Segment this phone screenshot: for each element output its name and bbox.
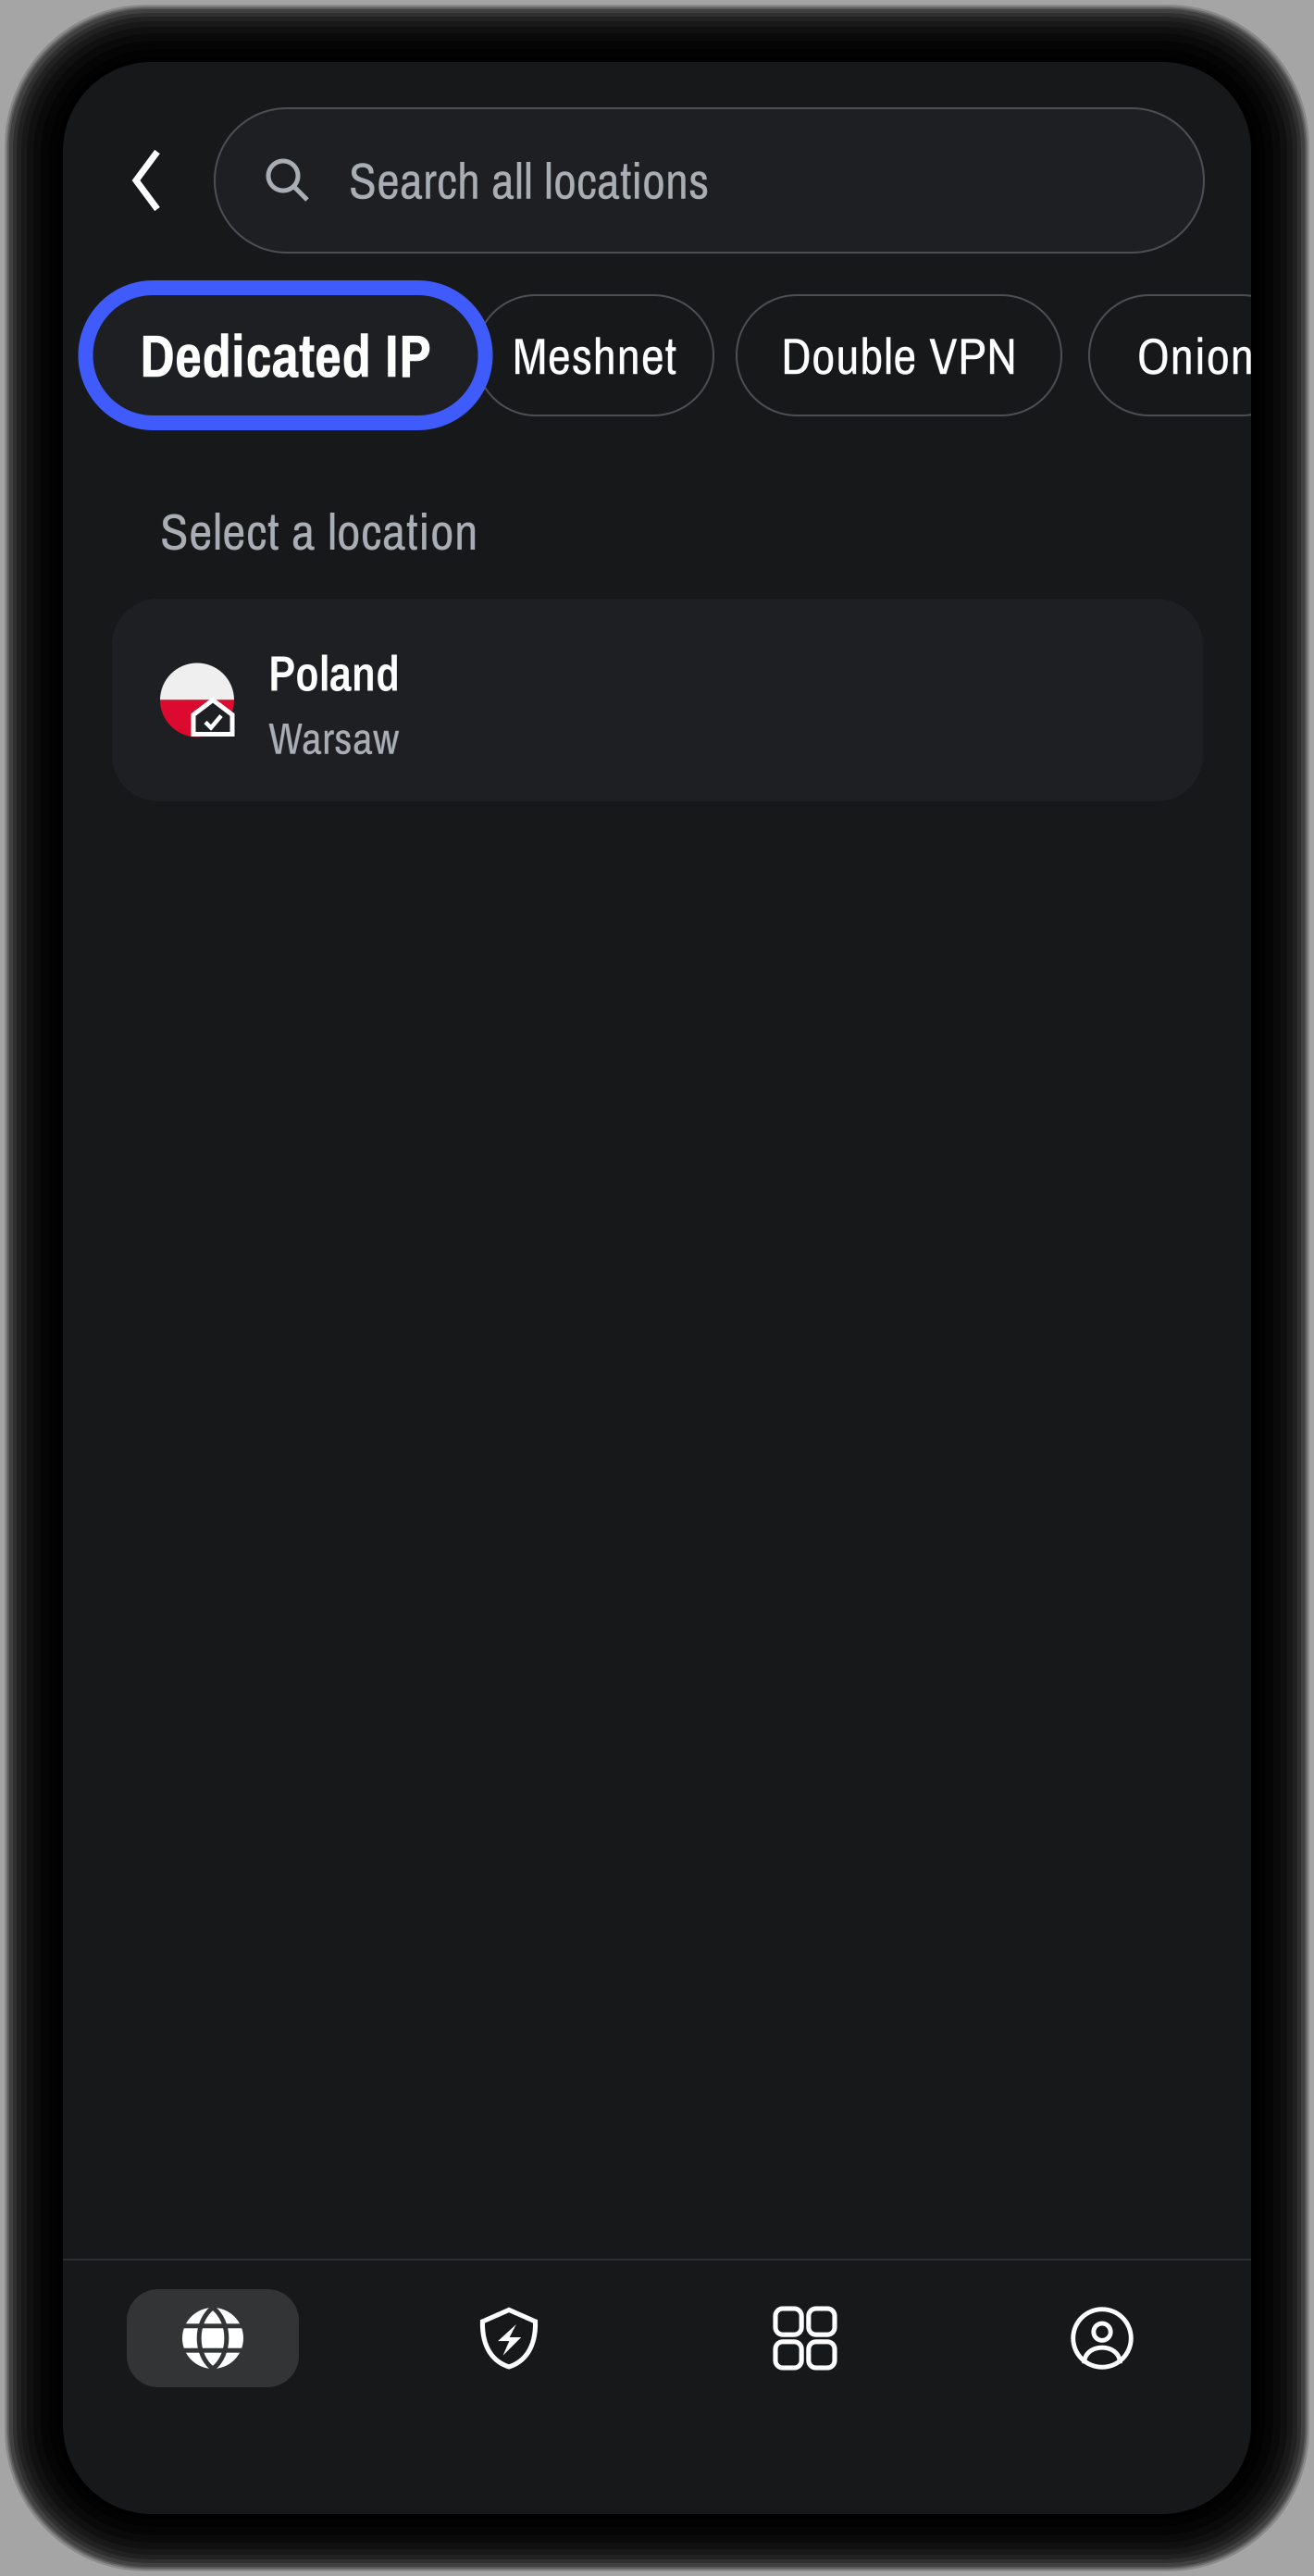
button[interactable]: Profile	[1033, 2289, 1171, 2387]
button[interactable]: Locations	[127, 2289, 299, 2387]
staticText: Double VPN	[781, 320, 1017, 390]
button[interactable]: Onion	[1089, 295, 1302, 415]
staticText: Warsaw	[268, 708, 399, 768]
staticText: Select a location	[160, 496, 478, 566]
staticText: Meshnet	[512, 320, 677, 390]
button[interactable]: Poland	[112, 599, 1203, 801]
button[interactable]: Back	[96, 108, 198, 253]
button[interactable]: Meshnet	[476, 295, 713, 415]
button[interactable]: Tools	[736, 2289, 874, 2387]
button[interactable]: Threat Protection	[440, 2289, 578, 2387]
staticText: Poland	[268, 640, 400, 706]
button[interactable]: Search all locations	[215, 108, 1204, 253]
button[interactable]: Dedicated IP	[93, 295, 478, 415]
staticText: Onion	[1137, 320, 1254, 390]
staticText: Search all locations	[349, 146, 709, 214]
staticText: Dedicated IP	[140, 315, 431, 395]
button[interactable]: Double VPN	[737, 295, 1061, 415]
